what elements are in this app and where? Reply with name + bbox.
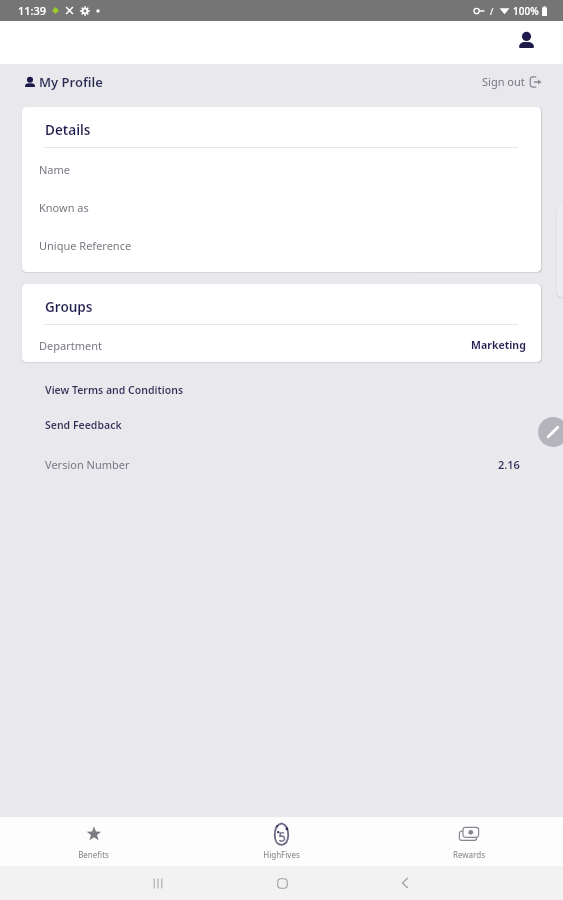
staticText: Version Number bbox=[45, 457, 130, 472]
staticText: 100% bbox=[513, 4, 539, 18]
staticText: 11:39 bbox=[18, 3, 47, 18]
staticText: Details bbox=[45, 121, 91, 139]
button[interactable]: Home bbox=[268, 866, 296, 900]
staticText: Groups bbox=[45, 298, 93, 316]
staticText: View Terms and Conditions bbox=[45, 383, 184, 397]
staticText: Marketing bbox=[471, 338, 526, 352]
staticText: HighFives bbox=[263, 849, 300, 860]
button[interactable]: Edit bbox=[538, 417, 563, 447]
button[interactable]: Recent apps bbox=[144, 866, 172, 900]
button[interactable]: Sign out bbox=[472, 64, 563, 99]
button[interactable]: My Profile bbox=[0, 64, 111, 99]
button[interactable]: Benefits bbox=[0, 817, 187, 866]
staticText: Unique Reference bbox=[39, 238, 132, 253]
staticText: / bbox=[490, 5, 494, 17]
button[interactable]: Profile bbox=[513, 27, 539, 53]
button[interactable]: HighFives bbox=[187, 817, 375, 866]
staticText: Sign out bbox=[482, 74, 525, 89]
staticText: 2.16 bbox=[498, 457, 520, 472]
button[interactable]: Back bbox=[391, 866, 419, 900]
button[interactable]: Send Feedback bbox=[0, 412, 563, 438]
staticText: Known as bbox=[39, 200, 89, 215]
button[interactable]: View Terms and Conditions bbox=[0, 377, 563, 403]
staticText: Name bbox=[39, 162, 71, 177]
staticText: Send Feedback bbox=[45, 418, 122, 432]
staticText: My Profile bbox=[39, 73, 103, 91]
button[interactable]: Rewards bbox=[375, 817, 563, 866]
staticText: Rewards bbox=[453, 849, 485, 860]
staticText: Benefits bbox=[78, 849, 109, 860]
staticText: Department bbox=[39, 338, 102, 353]
